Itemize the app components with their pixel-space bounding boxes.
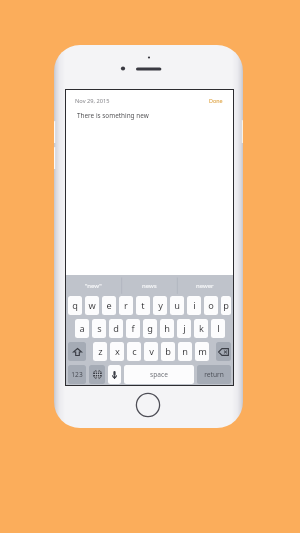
staticText: l (217, 322, 220, 335)
staticText: v (149, 345, 154, 358)
button[interactable]: t (136, 296, 150, 315)
staticText: b (165, 345, 171, 358)
button[interactable]: u (170, 296, 184, 315)
staticText: w (88, 299, 96, 312)
button[interactable]: Dictate (108, 365, 121, 384)
button[interactable]: h (160, 319, 174, 338)
button[interactable]: b (161, 342, 175, 361)
button[interactable]: p (221, 296, 231, 315)
staticText: i (193, 299, 196, 312)
staticText: e (106, 299, 112, 312)
staticText: p (223, 299, 229, 312)
staticText: return (204, 370, 224, 379)
button[interactable]: newer (177, 275, 233, 296)
button[interactable]: s (92, 319, 106, 338)
staticText: t (141, 299, 145, 312)
button[interactable]: j (177, 319, 191, 338)
staticText: n (182, 345, 188, 358)
button[interactable]: Shift (68, 342, 86, 361)
staticText: Nov 29, 2015 (75, 97, 110, 105)
button[interactable]: c (127, 342, 141, 361)
staticText: 123 (71, 370, 83, 379)
button[interactable]: y (153, 296, 167, 315)
staticText: o (208, 299, 214, 312)
staticText: z (98, 345, 103, 358)
staticText: u (174, 299, 180, 312)
button[interactable]: Backspace (216, 342, 231, 361)
staticText: s (97, 322, 102, 335)
staticText: Done (209, 97, 223, 104)
button[interactable]: v (144, 342, 158, 361)
staticText: x (115, 345, 120, 358)
staticText: news (142, 282, 157, 290)
button[interactable]: k (194, 319, 208, 338)
button[interactable]: w (85, 296, 99, 315)
staticText: space (150, 370, 168, 379)
button[interactable]: space (124, 365, 194, 384)
button[interactable]: o (204, 296, 218, 315)
button[interactable]: i (187, 296, 201, 315)
staticText: j (183, 322, 186, 335)
button[interactable]: g (143, 319, 157, 338)
button[interactable]: 123 (68, 365, 86, 384)
button[interactable]: Switch keyboard (89, 365, 105, 384)
button[interactable]: q (68, 296, 82, 315)
button[interactable]: e (102, 296, 116, 315)
staticText: g (147, 322, 153, 335)
button[interactable]: "new" (66, 275, 121, 296)
button[interactable]: z (93, 342, 107, 361)
button[interactable]: f (126, 319, 140, 338)
staticText: f (131, 322, 135, 335)
button[interactable]: r (119, 296, 133, 315)
staticText: y (158, 299, 163, 312)
button[interactable]: news (121, 275, 177, 296)
button[interactable]: return (197, 365, 231, 384)
button[interactable]: Done (206, 94, 226, 107)
staticText: a (79, 322, 85, 335)
button[interactable]: n (178, 342, 192, 361)
staticText: q (72, 299, 78, 312)
staticText: d (113, 322, 119, 335)
button[interactable]: a (75, 319, 89, 338)
button[interactable]: x (110, 342, 124, 361)
staticText: newer (196, 282, 214, 290)
button[interactable]: d (109, 319, 123, 338)
staticText: c (132, 345, 137, 358)
staticText: r (124, 299, 128, 312)
button[interactable]: m (195, 342, 209, 361)
staticText: h (164, 322, 170, 335)
button[interactable]: l (211, 319, 225, 338)
staticText: k (199, 322, 204, 335)
staticText: "new" (85, 282, 102, 290)
staticText: There is something new (77, 111, 149, 120)
staticText: m (198, 345, 207, 358)
